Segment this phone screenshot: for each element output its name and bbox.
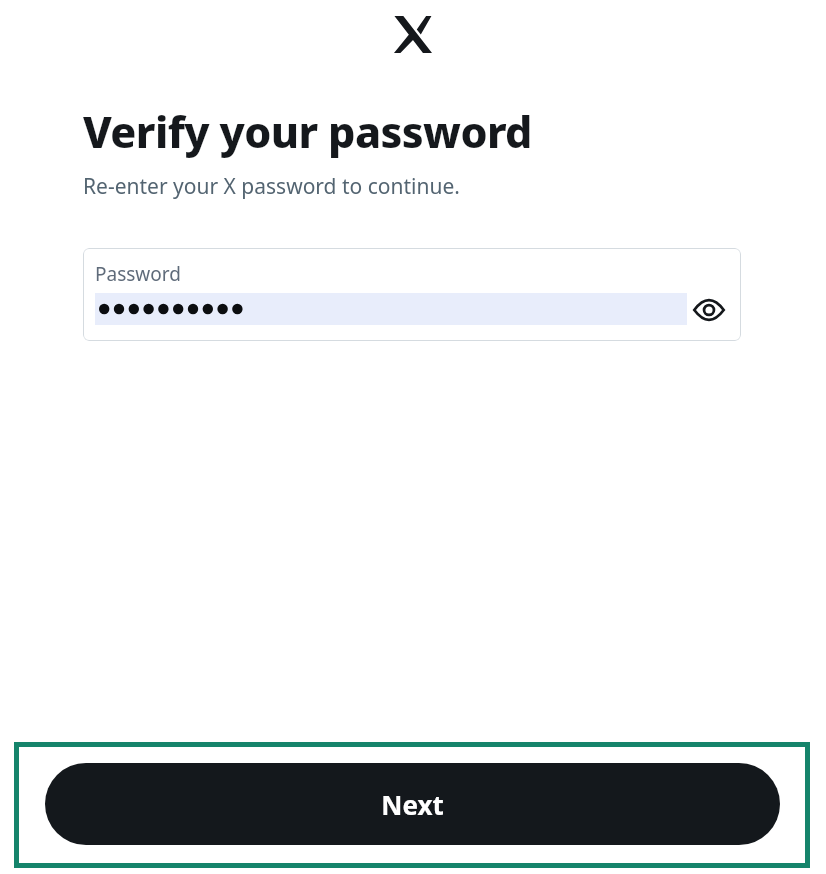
other: X logo bbox=[394, 16, 432, 53]
button[interactable]: Next bbox=[45, 763, 780, 845]
button[interactable]: Show password bbox=[691, 292, 727, 328]
staticText: Verify your password bbox=[83, 102, 532, 161]
staticText: Re-enter your X password to continue. bbox=[83, 172, 460, 201]
button[interactable]: Password bbox=[83, 248, 741, 341]
staticText: Next bbox=[381, 787, 444, 822]
staticText: Password bbox=[95, 261, 181, 287]
